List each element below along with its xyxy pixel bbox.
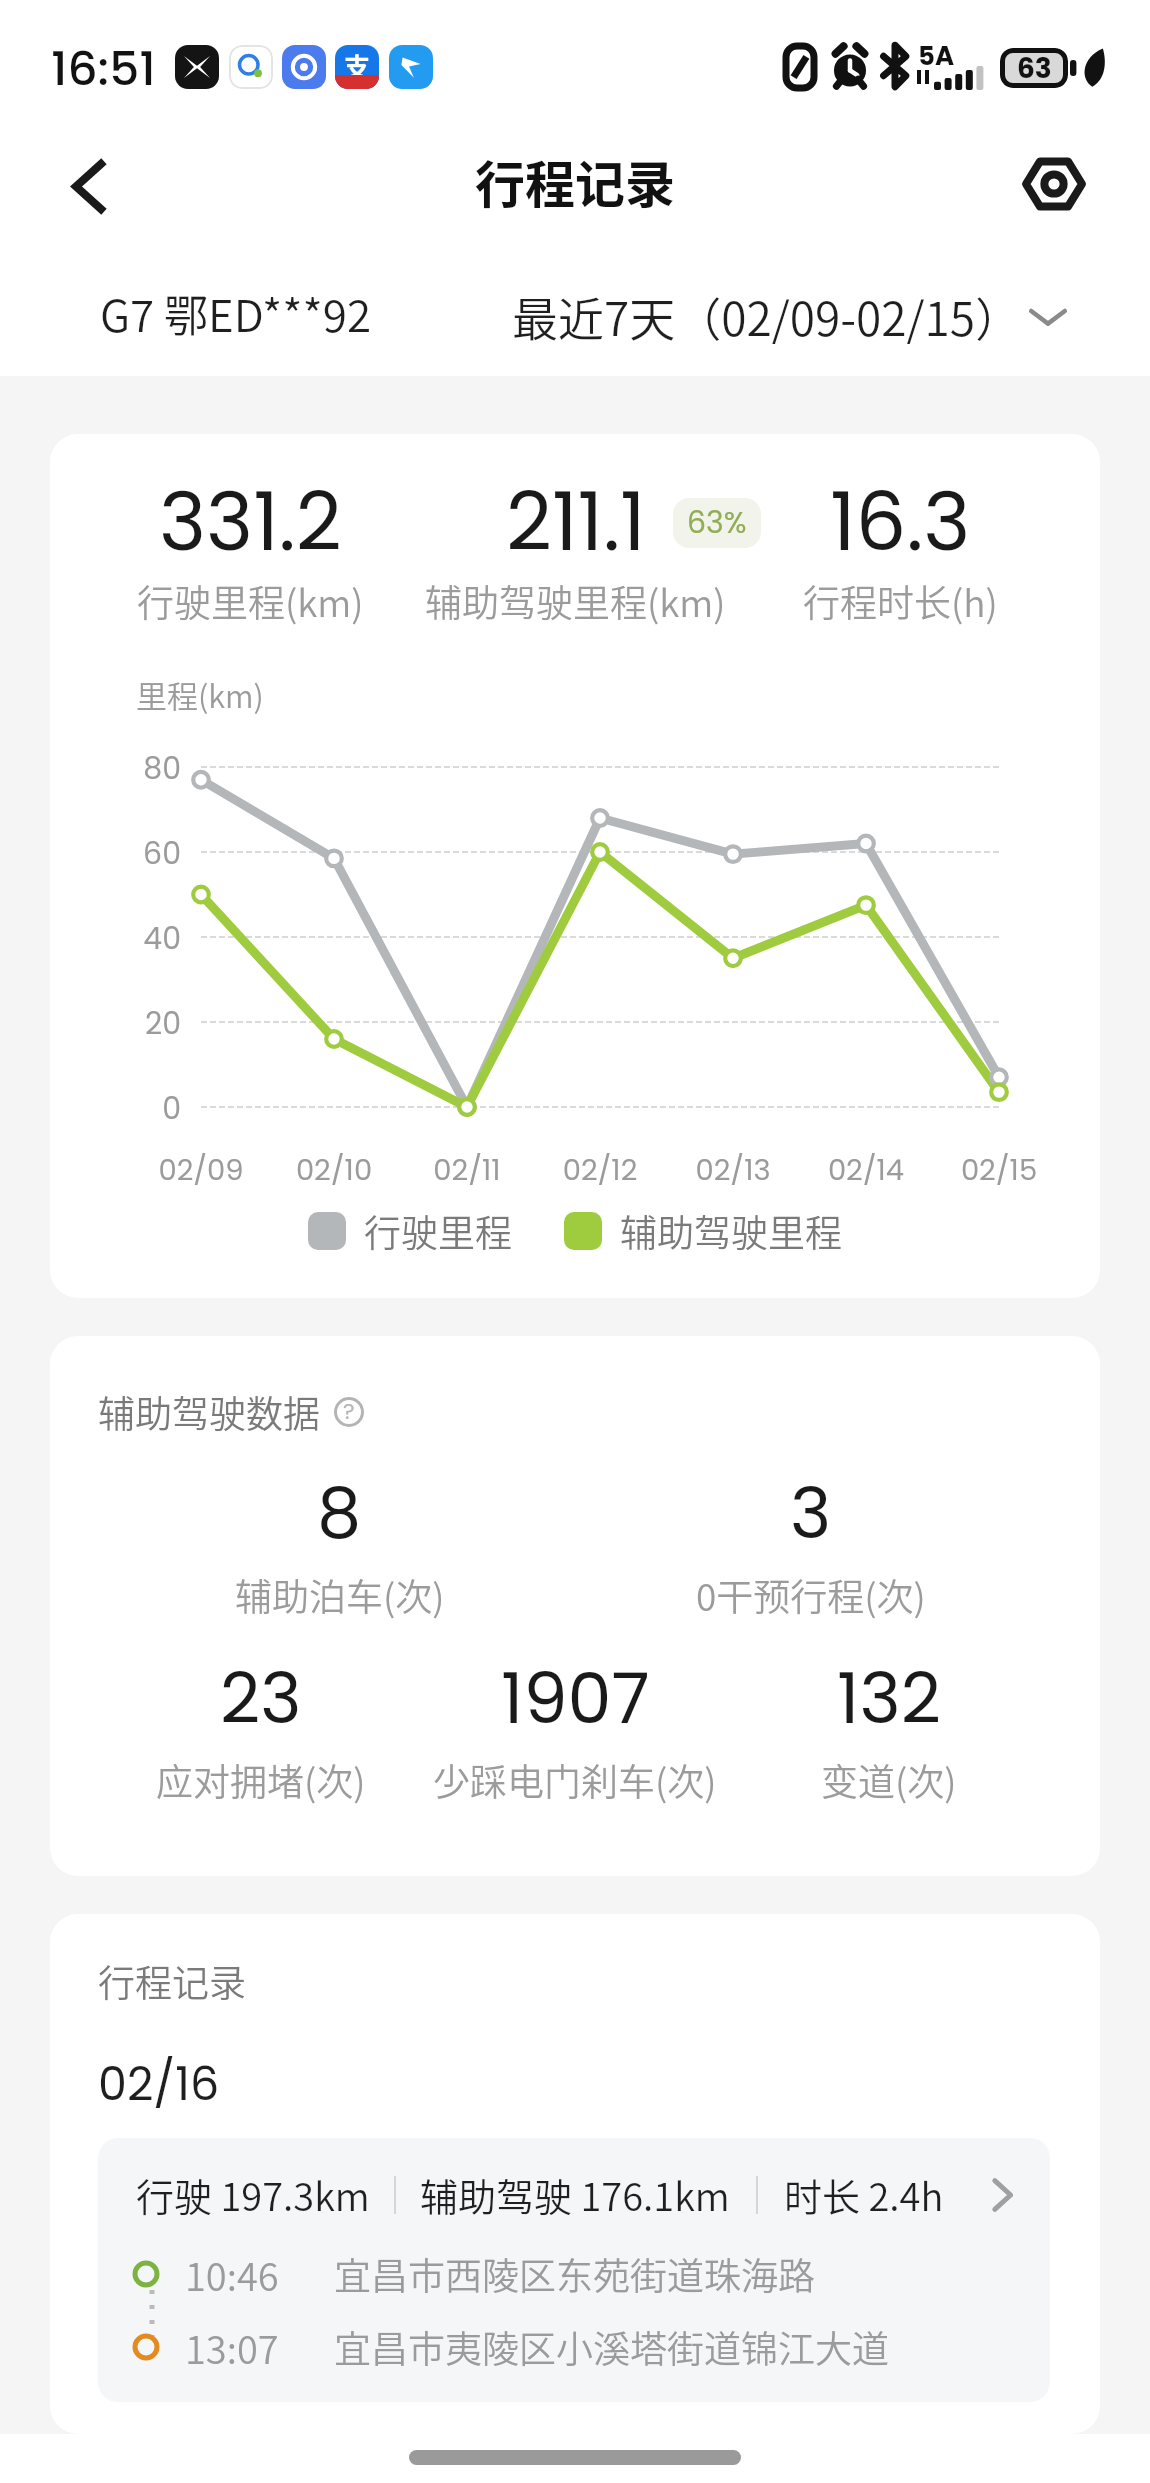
staticText: 里程(km) <box>136 672 264 717</box>
button[interactable]: 行驶 197.3km <box>98 2138 1050 2402</box>
staticText: 16:51 <box>51 36 156 102</box>
staticText: 辅助驾驶里程(km) <box>425 574 726 628</box>
staticText: 支 <box>344 47 371 85</box>
staticText: 辅助驾驶 176.1km <box>420 2167 730 2222</box>
staticText: 宜昌市西陵区东苑街道珠海路 <box>334 2247 815 2301</box>
staticText: 行程记录 <box>98 1954 246 2008</box>
staticText: 80 <box>50 748 181 790</box>
staticText: 211.1 <box>506 466 646 578</box>
staticText: 02/12 <box>500 1150 700 1191</box>
staticText: 0干预行程(次) <box>696 1568 926 1622</box>
staticText: 行驶里程 <box>364 1204 512 1258</box>
staticText: 63 <box>1017 49 1052 88</box>
staticText: 331.2 <box>159 466 342 578</box>
staticText: 行程记录 <box>475 145 675 217</box>
staticText: 应对拥堵(次) <box>156 1753 366 1807</box>
staticText: 63% <box>687 502 747 544</box>
staticText: 行程时长(h) <box>803 574 998 628</box>
staticText: 行驶里程(km) <box>137 574 364 628</box>
staticText: 1907 <box>501 1649 650 1747</box>
button[interactable]: Help: what is assisted-driving data <box>328 1391 370 1433</box>
button[interactable]: Back <box>40 134 136 238</box>
staticText: G7 鄂ED***92 <box>100 281 372 345</box>
staticText: 02/13 <box>633 1150 833 1191</box>
staticText: 02/15 <box>899 1150 1099 1191</box>
staticText: 132 <box>837 1649 941 1747</box>
staticText: 宜昌市夷陵区小溪塔街道锦江大道 <box>334 2320 889 2374</box>
staticText: 时长 2.4h <box>784 2167 944 2222</box>
staticText: 最近7天（02/09-02/15） <box>512 283 1022 350</box>
staticText: 02/11 <box>367 1150 567 1191</box>
staticText: 20 <box>50 1003 181 1045</box>
staticText: 辅助驾驶数据 <box>98 1385 320 1439</box>
staticText: ? <box>343 1396 355 1427</box>
staticText: 辅助泊车(次) <box>235 1568 445 1622</box>
staticText: 变道(次) <box>821 1753 957 1807</box>
staticText: 5A <box>918 38 955 74</box>
staticText: 少踩电门刹车(次) <box>433 1753 717 1807</box>
staticText: 02/09 <box>101 1150 301 1191</box>
button[interactable]: Settings <box>1006 129 1102 239</box>
staticText: 8 <box>317 1464 362 1562</box>
staticText: 60 <box>50 833 181 875</box>
staticText: 10:46 <box>185 2247 279 2302</box>
staticText: 0 <box>50 1088 181 1130</box>
button[interactable]: 最近7天（02/09-02/15） <box>500 269 1080 364</box>
staticText: 23 <box>220 1649 302 1747</box>
staticText: 02/14 <box>766 1150 966 1191</box>
staticText: 16.3 <box>830 466 971 578</box>
staticText: 13:07 <box>185 2320 279 2375</box>
staticText: 辅助驾驶里程 <box>620 1204 842 1258</box>
staticText: 02/16 <box>98 2052 220 2116</box>
staticText: 40 <box>50 918 181 960</box>
staticText: 行驶 197.3km <box>136 2167 370 2222</box>
staticText: 02/10 <box>234 1150 434 1191</box>
staticText: 3 <box>790 1464 832 1562</box>
